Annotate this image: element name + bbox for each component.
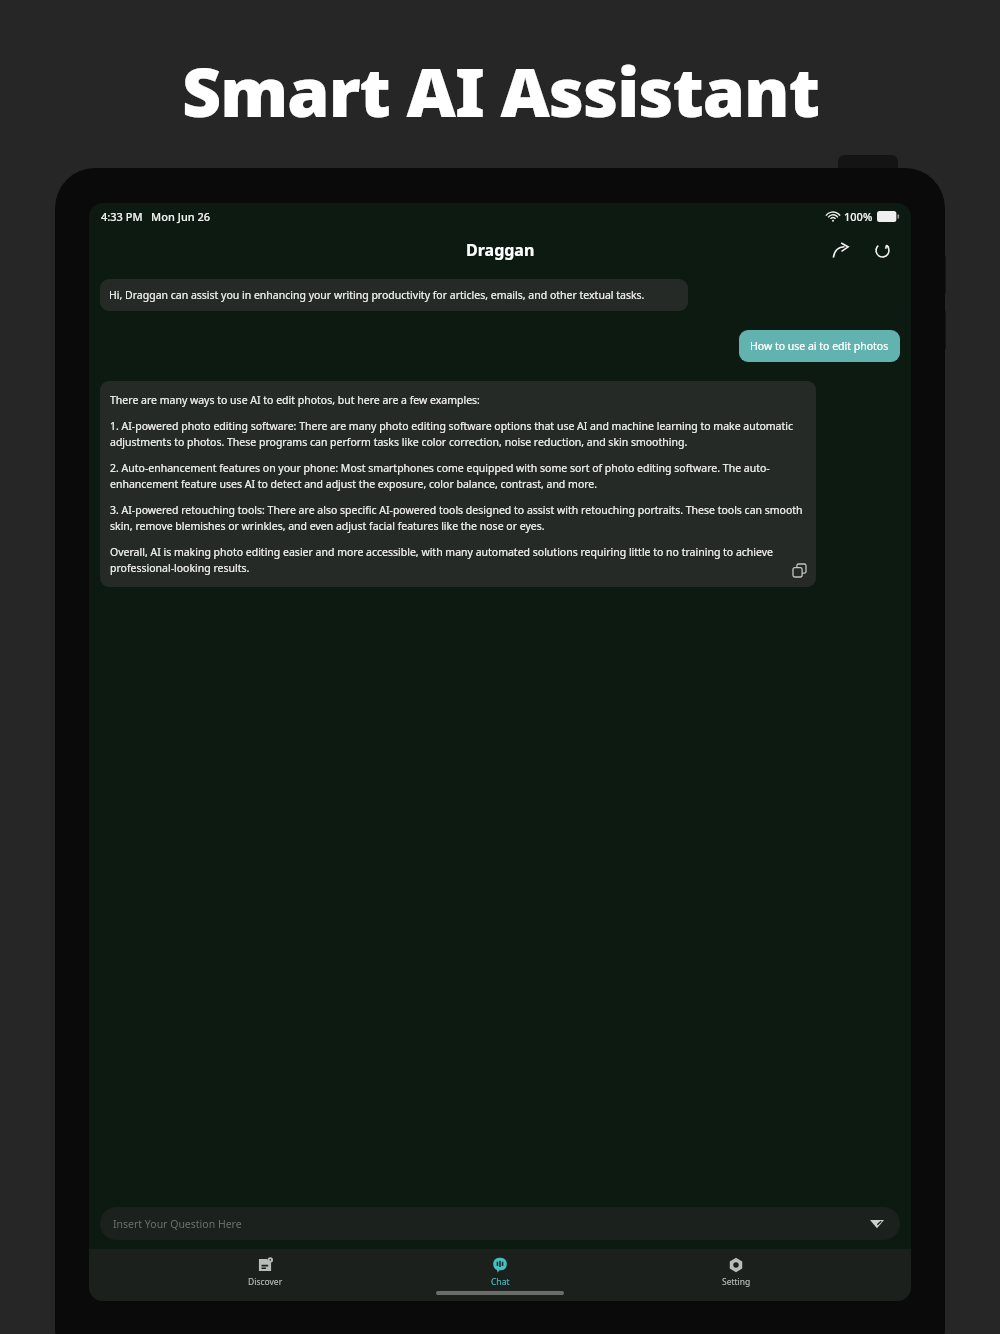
button[interactable]: Copy bbox=[788, 559, 810, 581]
button[interactable]: Hi, Draggan can assist you in enhancing … bbox=[100, 279, 688, 311]
staticText: Setting bbox=[722, 1276, 751, 1288]
staticText: 1. AI-powered photo editing software: Th… bbox=[110, 419, 806, 449]
button[interactable]: Insert Your Question Here bbox=[100, 1207, 900, 1240]
staticText: Hi, Draggan can assist you in enhancing … bbox=[109, 288, 645, 302]
staticText: How to use ai to edit photos bbox=[750, 339, 889, 353]
staticText: Overall, AI is making photo editing easi… bbox=[110, 545, 806, 575]
staticText: Chat bbox=[491, 1276, 510, 1288]
staticText: Discover bbox=[248, 1276, 283, 1288]
staticText: 2. Auto-enhancement features on your pho… bbox=[110, 461, 806, 491]
staticText: Smart AI Assistant bbox=[182, 44, 819, 137]
staticText: Draggan bbox=[466, 239, 535, 261]
button[interactable]: There are many ways to use AI to edit ph… bbox=[100, 381, 816, 587]
button[interactable]: Discover bbox=[205, 1255, 325, 1290]
staticText: Insert Your Question Here bbox=[113, 1217, 242, 1231]
staticText: 4:33 PM Mon Jun 26 bbox=[101, 209, 211, 224]
button[interactable]: Chat bbox=[440, 1255, 560, 1290]
staticText: 100% bbox=[844, 209, 873, 224]
staticText: 3. AI-powered retouching tools: There ar… bbox=[110, 503, 806, 533]
button[interactable]: Setting bbox=[676, 1255, 796, 1290]
button[interactable]: Share bbox=[825, 235, 855, 265]
button[interactable]: How to use ai to edit photos bbox=[739, 330, 900, 362]
staticText: There are many ways to use AI to edit ph… bbox=[110, 393, 480, 407]
button[interactable]: Send bbox=[867, 1214, 887, 1234]
button[interactable]: Refresh bbox=[867, 235, 897, 265]
